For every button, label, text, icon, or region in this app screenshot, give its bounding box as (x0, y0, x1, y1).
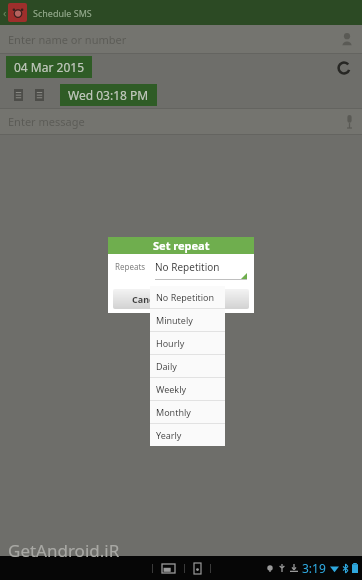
button[interactable]: Enter message (0, 109, 362, 134)
staticText: Enter name or number (8, 32, 127, 47)
button[interactable]: Set repeat (336, 60, 352, 76)
button[interactable]: Monthly (150, 401, 225, 423)
staticText: No Repetition (155, 260, 220, 274)
staticText: Yearly (156, 429, 182, 441)
staticText: Schedule SMS (33, 7, 92, 19)
staticText: Cancel (132, 293, 162, 305)
staticText: GetAndroid.iR (8, 539, 120, 562)
button[interactable]: Voice input (346, 115, 353, 128)
staticText: ‹ (3, 5, 7, 20)
button[interactable]: 04 Mar 2015 (14, 56, 84, 78)
button[interactable]: Cancel (113, 289, 180, 309)
staticText: Hourly (156, 337, 185, 349)
staticText: Weekly (156, 383, 187, 395)
button[interactable]: Recents (162, 564, 175, 573)
button[interactable]: Attach (14, 89, 23, 101)
button[interactable]: Minutely (150, 309, 225, 331)
button[interactable]: ‹ (0, 0, 362, 25)
button[interactable]: Hourly (150, 332, 225, 354)
staticText: Set repeat (153, 238, 210, 253)
button[interactable]: Screenshot (194, 563, 201, 574)
button[interactable]: Template (35, 89, 44, 101)
button[interactable]: Daily (150, 355, 225, 377)
button[interactable]: Enter name or number (0, 25, 362, 53)
button[interactable]: Repeats (115, 254, 254, 279)
button[interactable]: Yearly (150, 424, 225, 446)
button[interactable]: Pick contact (340, 32, 354, 46)
button[interactable]: No Repetition (150, 286, 225, 308)
staticText: 04 Mar 2015 (14, 59, 84, 75)
button[interactable]: Weekly (150, 378, 225, 400)
staticText: Repeats (115, 261, 146, 272)
staticText: Daily (156, 360, 177, 372)
staticText: 3:19 (302, 560, 326, 576)
button[interactable]: OK (182, 289, 249, 309)
staticText: Minutely (156, 314, 193, 326)
staticText: No Repetition (156, 291, 215, 303)
staticText: Wed 03:18 PM (68, 87, 149, 103)
staticText: Monthly (156, 406, 191, 418)
staticText: OK (209, 293, 223, 305)
button[interactable]: Wed 03:18 PM (68, 84, 149, 106)
staticText: Enter message (8, 114, 85, 129)
